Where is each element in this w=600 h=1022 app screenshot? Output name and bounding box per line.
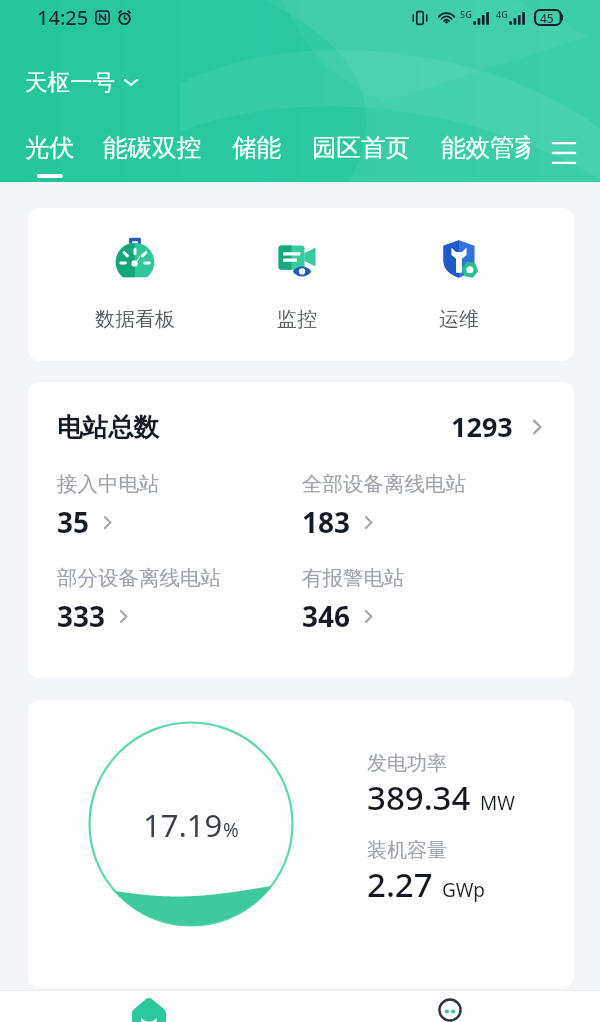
staticText: 17.19 <box>143 804 223 846</box>
staticText: 能碳双控 <box>103 132 201 163</box>
staticText: 光伏 <box>25 132 74 163</box>
staticText: 储能 <box>232 132 281 163</box>
button[interactable]: More <box>300 991 600 1015</box>
staticText: 333 <box>57 597 106 635</box>
button[interactable]: 天枢一号 <box>25 68 141 96</box>
staticText: 天枢一号 <box>25 68 115 96</box>
staticText: 发电功率 <box>367 751 447 776</box>
staticText: 有报警电站 <box>302 565 405 591</box>
button[interactable]: 园区首页 <box>312 132 410 174</box>
button[interactable]: 接入中电站 <box>57 471 302 541</box>
button[interactable]: 监控 <box>216 237 378 332</box>
staticText: 14:25 <box>37 4 89 31</box>
staticText: 1293 <box>451 408 513 445</box>
staticText: 346 <box>302 597 351 635</box>
button[interactable]: 电站总数 <box>57 408 547 445</box>
staticText: MW <box>480 790 515 816</box>
button[interactable]: 能效管家 <box>441 132 530 174</box>
staticText: 35 <box>57 503 90 541</box>
staticText: 监控 <box>277 307 317 332</box>
button[interactable]: 部分设备离线电站 <box>57 565 302 635</box>
staticText: 5G <box>460 8 472 20</box>
staticText: 能效管家 <box>441 132 530 163</box>
staticText: 全部设备离线电站 <box>302 471 466 497</box>
staticText: 389.34 <box>367 775 471 820</box>
button[interactable]: 能碳双控 <box>103 132 201 174</box>
staticText: 接入中电站 <box>57 471 160 497</box>
staticText: GWp <box>442 877 485 903</box>
staticText: 数据看板 <box>95 307 175 332</box>
staticText: 45 <box>540 10 554 26</box>
button[interactable]: 数据看板 <box>53 237 216 332</box>
button[interactable]: 储能 <box>232 132 281 174</box>
button[interactable]: 全部设备离线电站 <box>302 471 547 541</box>
staticText: % <box>223 817 239 843</box>
button[interactable]: 光伏 <box>25 132 74 178</box>
staticText: 4G <box>496 8 508 20</box>
button[interactable]: Menu <box>544 133 584 173</box>
staticText: 2.27 <box>367 862 433 907</box>
staticText: 183 <box>302 503 351 541</box>
button[interactable]: 有报警电站 <box>302 565 547 635</box>
staticText: 电站总数 <box>57 411 159 443</box>
staticText: 运维 <box>439 307 479 332</box>
staticText: 部分设备离线电站 <box>57 565 221 591</box>
staticText: 园区首页 <box>312 132 410 163</box>
button[interactable]: 运维 <box>378 237 540 332</box>
button[interactable]: Home <box>0 991 300 1022</box>
staticText: 装机容量 <box>367 838 447 863</box>
